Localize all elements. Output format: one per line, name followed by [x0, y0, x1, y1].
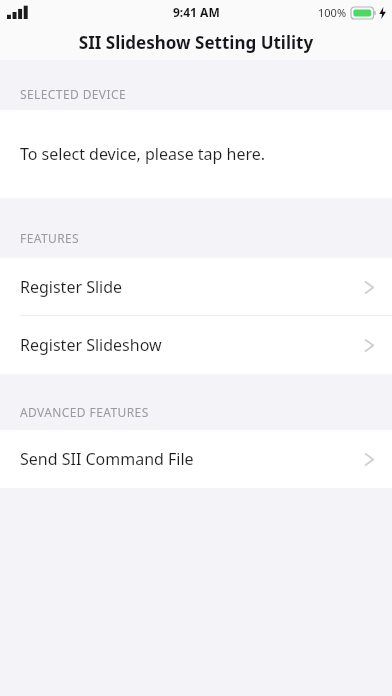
- button[interactable]: Register Slideshow: [0, 316, 392, 374]
- staticText: Register Slideshow: [20, 334, 162, 356]
- staticText: ADVANCED FEATURES: [20, 404, 149, 420]
- staticText: Send SII Command File: [20, 448, 194, 470]
- button[interactable]: Register Slide: [0, 258, 392, 316]
- staticText: FEATURES: [20, 230, 80, 246]
- staticText: 9:41 AM: [173, 4, 220, 20]
- button[interactable]: To select device, please tap here.: [0, 110, 392, 198]
- staticText: To select device, please tap here.: [20, 143, 266, 165]
- staticText: 100%: [318, 5, 347, 20]
- button[interactable]: Send SII Command File: [0, 430, 392, 488]
- staticText: SII Slideshow Setting Utility: [0, 31, 392, 54]
- staticText: SELECTED DEVICE: [20, 86, 126, 102]
- staticText: Register Slide: [20, 276, 123, 298]
